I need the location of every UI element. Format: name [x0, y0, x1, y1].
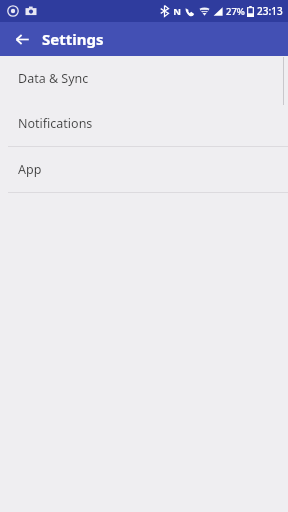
staticText: N: [173, 5, 181, 18]
staticText: Notifications: [18, 115, 93, 132]
staticText: Data & Sync: [18, 70, 89, 87]
button[interactable]: Back: [10, 27, 34, 51]
staticText: Settings: [42, 29, 104, 49]
button[interactable]: Data & Sync: [0, 56, 288, 101]
staticText: 23:13: [257, 4, 283, 18]
button[interactable]: Notifications: [0, 101, 288, 146]
button[interactable]: App: [0, 147, 288, 192]
staticText: App: [18, 161, 42, 178]
staticText: 27%: [226, 5, 245, 18]
